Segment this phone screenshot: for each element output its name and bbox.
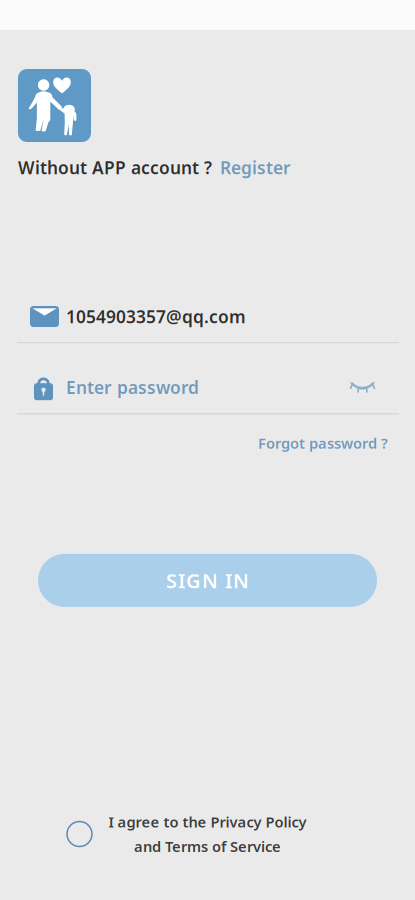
- staticText: 1054903357@qq.com: [66, 305, 246, 328]
- staticText: I agree to the Privacy Policy: [108, 812, 306, 831]
- staticText: Without APP account ?: [18, 156, 212, 179]
- staticText: Forgot password ?: [258, 433, 388, 453]
- staticText: Enter password: [66, 376, 199, 399]
- button[interactable]: Register: [220, 156, 291, 179]
- button[interactable]: Forgot password ?: [258, 433, 388, 453]
- button[interactable]: Agree to the Privacy Policy and Terms of…: [67, 821, 92, 846]
- staticText: Register: [220, 156, 291, 179]
- button[interactable]: Show password: [349, 381, 399, 394]
- button[interactable]: SIGN IN: [38, 554, 377, 607]
- staticText: and Terms of Service: [134, 836, 281, 856]
- staticText: SIGN IN: [166, 567, 249, 594]
